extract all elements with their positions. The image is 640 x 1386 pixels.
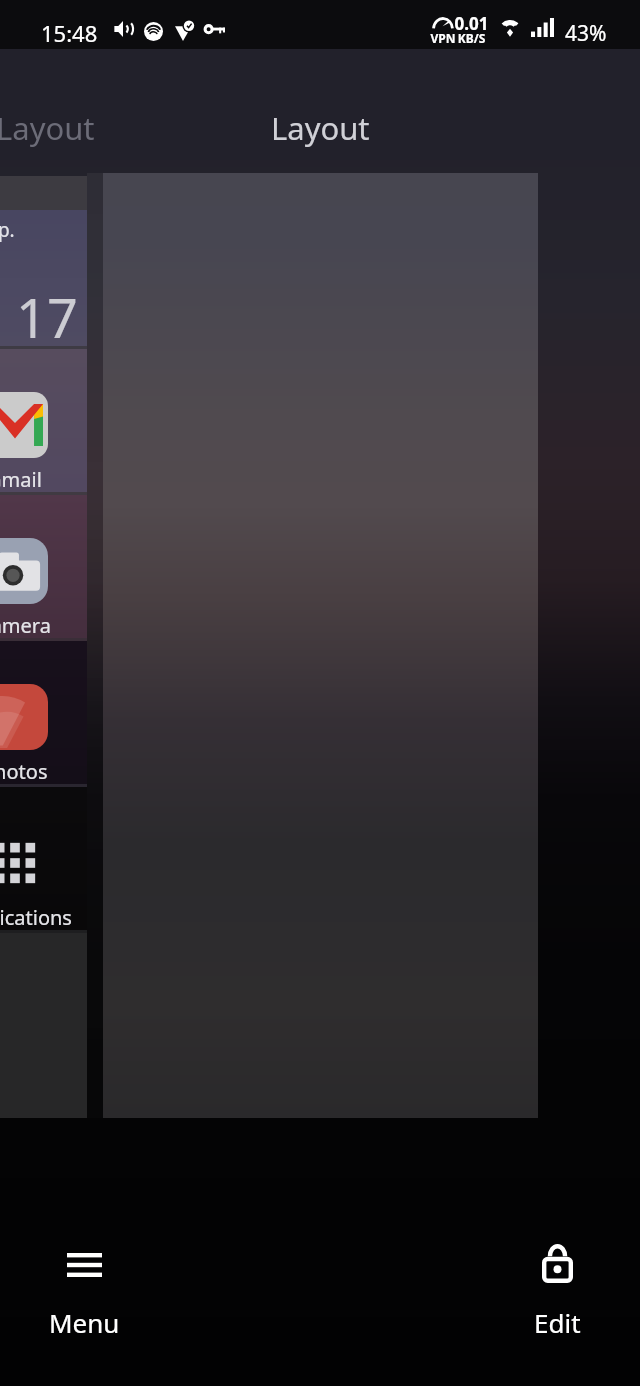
staticText: Layout <box>271 107 370 149</box>
staticText: 17 <box>16 280 78 354</box>
button[interactable]: Tue, 17 Sep. <box>0 176 87 1118</box>
staticText: Tue, 17 Sep. <box>0 217 15 243</box>
staticText: KB/S <box>451 30 492 46</box>
staticText: Photos <box>0 758 48 785</box>
button[interactable]: Menu <box>24 1242 144 1350</box>
staticText: 43% <box>565 19 607 48</box>
button[interactable] <box>103 173 538 1118</box>
staticText: VPN <box>427 30 459 46</box>
staticText: Gmail <box>0 466 42 493</box>
staticText: 0.01 <box>451 12 492 35</box>
button[interactable]: Edit <box>497 1242 617 1350</box>
staticText: Applications <box>0 904 72 931</box>
staticText: Camera <box>0 612 51 639</box>
staticText: Menu <box>49 1305 120 1340</box>
staticText: 15:48 <box>41 18 98 48</box>
staticText: Layout <box>0 107 95 149</box>
staticText: Edit <box>534 1305 581 1340</box>
